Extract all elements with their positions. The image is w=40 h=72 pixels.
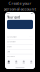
button[interactable]: Activity <box>12 59 20 65</box>
staticText: Currency <box>7 56 15 57</box>
button[interactable]: Expiry <box>7 44 33 49</box>
staticText: Your card <box>7 16 20 19</box>
staticText: personal account <box>3 6 36 11</box>
button[interactable]: Currency <box>7 54 33 59</box>
button[interactable]: Limit <box>7 49 33 54</box>
staticText: Create your <box>8 0 31 6</box>
staticText: Card number <box>7 36 17 38</box>
button[interactable]: Profile <box>27 59 35 65</box>
button[interactable]: Card number <box>7 35 33 39</box>
staticText: 9:41 <box>7 13 10 14</box>
staticText: Limit <box>7 51 9 52</box>
staticText: Cardholder <box>7 41 16 43</box>
staticText: Expiry <box>7 46 12 48</box>
button[interactable]: Send <box>20 59 27 65</box>
button[interactable]: Cards <box>5 59 12 65</box>
button[interactable]: Cardholder <box>7 39 33 44</box>
